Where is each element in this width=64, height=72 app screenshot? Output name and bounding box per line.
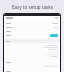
button[interactable] [4,25,60,29]
button[interactable] [4,71,60,72]
button[interactable] [4,21,60,25]
button[interactable]: Task toolbar [4,16,60,20]
staticText: Easy to setup tasks [12,4,53,10]
button[interactable]: Add task [4,33,60,38]
button[interactable] [4,29,60,33]
button[interactable] [4,60,60,64]
